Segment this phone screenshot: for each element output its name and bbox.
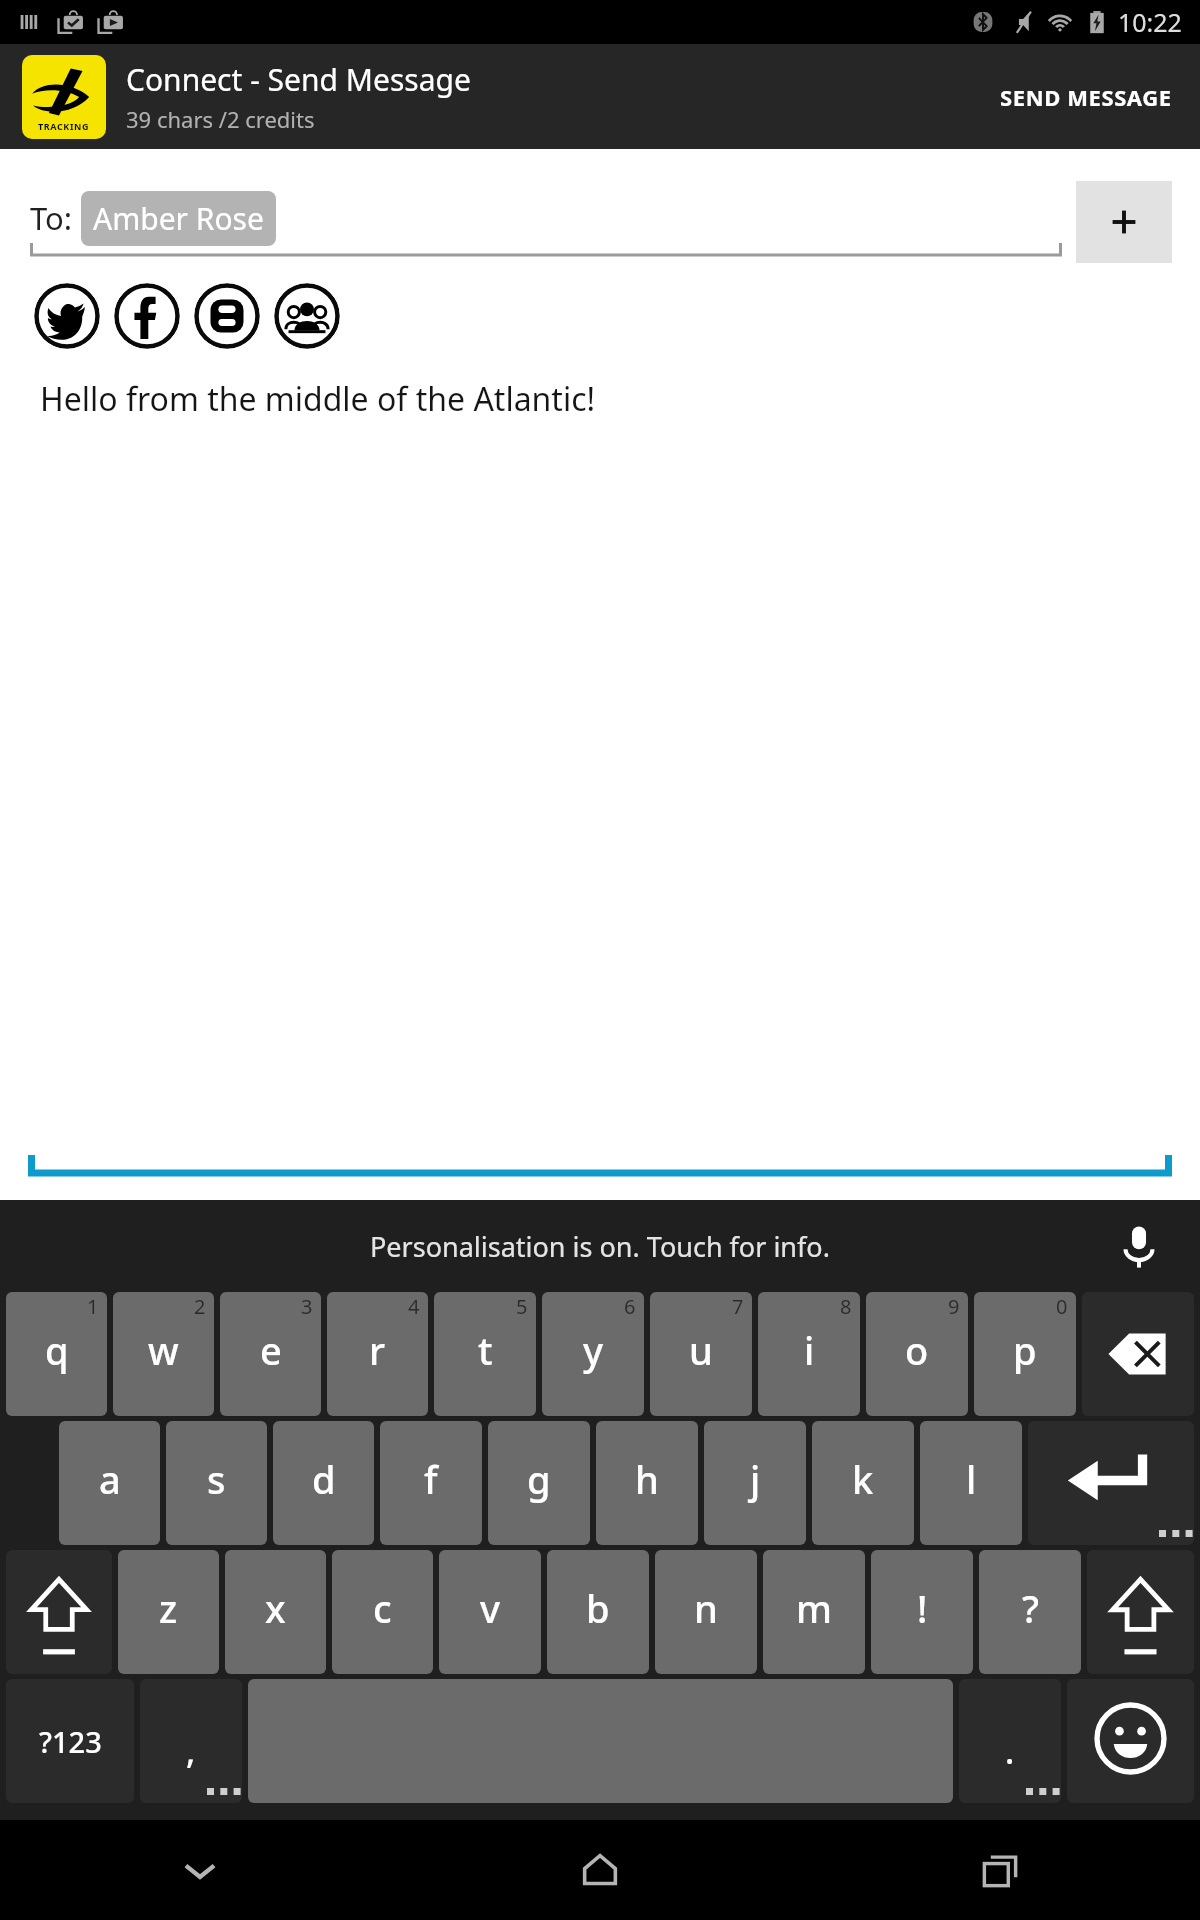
button[interactable]: App logo (22, 55, 106, 139)
button[interactable]: , (140, 1679, 242, 1803)
staticText: c (373, 1582, 392, 1634)
button[interactable]: Hide keyboard (0, 1820, 400, 1920)
staticText: d (312, 1453, 336, 1505)
button[interactable]: 6 (542, 1292, 644, 1416)
staticText: o (905, 1324, 929, 1376)
staticText: Connect - Send Message (126, 59, 471, 100)
button[interactable]: 3 (220, 1292, 321, 1416)
button[interactable]: Add recipient (1076, 181, 1172, 263)
button[interactable]: Groups (274, 283, 340, 349)
button[interactable]: Backspace (1082, 1292, 1194, 1416)
button[interactable]: n (655, 1550, 757, 1674)
button[interactable]: k (812, 1421, 914, 1545)
button[interactable]: m (763, 1550, 865, 1674)
staticText: . (1005, 1728, 1015, 1774)
staticText: 7 (732, 1293, 744, 1320)
staticText: q (45, 1324, 69, 1376)
button[interactable]: Emoji (1067, 1679, 1194, 1803)
staticText: k (852, 1453, 874, 1505)
button[interactable]: Recent apps (800, 1820, 1200, 1920)
staticText: 4 (408, 1293, 420, 1320)
staticText: t (478, 1324, 493, 1376)
button[interactable]: To: (30, 187, 1062, 249)
button[interactable]: v (439, 1550, 541, 1674)
staticText: ? (1022, 1582, 1039, 1634)
button[interactable]: SEND MESSAGE (994, 68, 1178, 126)
staticText: r (369, 1324, 386, 1376)
button[interactable]: 2 (113, 1292, 214, 1416)
staticText: m (796, 1582, 832, 1634)
button[interactable]: Twitter (34, 283, 100, 349)
staticText: TRACKING (38, 120, 90, 132)
staticText: n (694, 1582, 718, 1634)
button[interactable]: l (920, 1421, 1022, 1545)
button[interactable]: d (273, 1421, 374, 1545)
staticText: SEND MESSAGE (1000, 82, 1172, 112)
button[interactable]: g (488, 1421, 590, 1545)
staticText: v (480, 1582, 501, 1634)
button[interactable]: ! (871, 1550, 973, 1674)
staticText: h (635, 1453, 659, 1505)
button[interactable]: 8 (758, 1292, 860, 1416)
button[interactable]: Personalisation is on. Touch for info. (370, 1228, 830, 1265)
button[interactable]: ?123 (6, 1679, 134, 1803)
staticText: 3 (301, 1293, 313, 1320)
staticText: 9 (948, 1293, 960, 1320)
staticText: y (583, 1324, 604, 1376)
staticText: x (265, 1582, 286, 1634)
staticText: 39 chars /2 credits (126, 104, 315, 134)
button[interactable]: 7 (650, 1292, 752, 1416)
staticText: a (99, 1453, 121, 1505)
staticText: e (260, 1324, 282, 1376)
button[interactable]: ? (979, 1550, 1081, 1674)
staticText: s (207, 1453, 226, 1505)
staticText: 8 (840, 1293, 852, 1320)
staticText: 2 (194, 1293, 206, 1320)
button[interactable]: Home (400, 1820, 800, 1920)
staticText: To: (30, 197, 73, 239)
button[interactable]: z (118, 1550, 219, 1674)
button[interactable]: a (59, 1421, 160, 1545)
staticText: 5 (516, 1293, 528, 1320)
staticText: Amber Rose (93, 198, 264, 239)
staticText: ?123 (39, 1722, 102, 1761)
staticText: u (689, 1324, 713, 1376)
staticText: i (804, 1324, 815, 1376)
button[interactable]: Voice input (1112, 1219, 1166, 1273)
button[interactable]: Blogger (194, 283, 260, 349)
button[interactable]: Shift (6, 1550, 112, 1674)
button[interactable]: . (959, 1679, 1061, 1803)
staticText: j (750, 1453, 761, 1505)
staticText: 1 (87, 1293, 99, 1320)
staticText: b (586, 1582, 610, 1634)
button[interactable]: 5 (434, 1292, 536, 1416)
button[interactable]: x (225, 1550, 326, 1674)
staticText: l (966, 1453, 977, 1505)
button[interactable]: s (166, 1421, 267, 1545)
staticText: f (424, 1453, 438, 1505)
staticText: z (159, 1582, 178, 1634)
button[interactable]: Enter (1028, 1421, 1194, 1545)
button[interactable]: h (596, 1421, 698, 1545)
staticText: 0 (1056, 1293, 1068, 1320)
staticText: g (527, 1453, 551, 1505)
staticText: p (1013, 1324, 1037, 1376)
button[interactable]: 4 (327, 1292, 428, 1416)
staticText: , (186, 1728, 196, 1774)
button[interactable]: c (332, 1550, 433, 1674)
button[interactable]: f (380, 1421, 482, 1545)
staticText: 10:22 (1118, 5, 1182, 39)
button[interactable]: 0 (974, 1292, 1076, 1416)
staticText: w (148, 1324, 179, 1376)
button[interactable]: Facebook (114, 283, 180, 349)
staticText: ! (917, 1582, 928, 1634)
button[interactable]: Shift (1087, 1550, 1194, 1674)
button[interactable]: j (704, 1421, 806, 1545)
staticText: 6 (624, 1293, 636, 1320)
button[interactable]: 9 (866, 1292, 968, 1416)
button[interactable]: 1 (6, 1292, 107, 1416)
button[interactable]: b (547, 1550, 649, 1674)
staticText: Hello from the middle of the Atlantic! (40, 377, 596, 421)
